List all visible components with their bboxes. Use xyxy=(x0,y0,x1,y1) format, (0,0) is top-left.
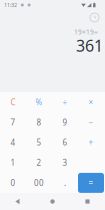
staticText: 8 xyxy=(36,117,41,128)
staticText: C xyxy=(10,97,15,107)
staticText: 9 xyxy=(62,117,67,128)
staticText: 6 xyxy=(62,137,67,148)
button[interactable]: 5 xyxy=(26,132,52,153)
staticText: . xyxy=(64,178,66,188)
button[interactable]: = xyxy=(78,173,104,193)
button[interactable]: 6 xyxy=(52,132,78,153)
staticText: 19×19= xyxy=(74,28,98,36)
button[interactable]: 8 xyxy=(26,112,52,132)
button[interactable]: × xyxy=(78,92,104,112)
staticText: × xyxy=(88,97,93,107)
button[interactable]: 2 xyxy=(26,153,52,173)
staticText: 1 xyxy=(10,157,15,168)
button[interactable]: 3 xyxy=(52,153,78,173)
staticText: 00 xyxy=(34,178,44,188)
button[interactable]: History xyxy=(89,12,100,23)
button[interactable]: 0 xyxy=(0,173,26,193)
staticText: 5 xyxy=(36,137,41,148)
button[interactable]: % xyxy=(26,92,52,112)
button[interactable]: 9 xyxy=(52,112,78,132)
staticText: 3 xyxy=(62,157,67,168)
staticText: 2 xyxy=(36,157,41,168)
staticText: − xyxy=(88,117,93,128)
button[interactable]: 4 xyxy=(0,132,26,153)
button[interactable]: + xyxy=(78,132,104,153)
button[interactable]: ÷ xyxy=(52,92,78,112)
button[interactable]: C xyxy=(0,92,26,112)
button[interactable]: Recents xyxy=(70,193,105,210)
staticText: 0 xyxy=(10,178,15,188)
button[interactable]: Back xyxy=(0,193,35,210)
button[interactable]: 00 xyxy=(26,173,52,193)
staticText: ÷ xyxy=(62,97,67,107)
button[interactable]: . xyxy=(52,173,78,193)
staticText: 4 xyxy=(10,137,15,148)
button[interactable]: Home xyxy=(35,193,70,210)
staticText: % xyxy=(35,97,42,107)
staticText: 361 xyxy=(76,35,103,56)
button[interactable]: − xyxy=(78,112,104,132)
staticText: 11:32 xyxy=(4,1,17,9)
button[interactable]: 7 xyxy=(0,112,26,132)
staticText: + xyxy=(88,137,93,148)
staticText: = xyxy=(88,178,93,188)
button[interactable]: 1 xyxy=(0,153,26,173)
staticText: 7 xyxy=(10,117,15,128)
